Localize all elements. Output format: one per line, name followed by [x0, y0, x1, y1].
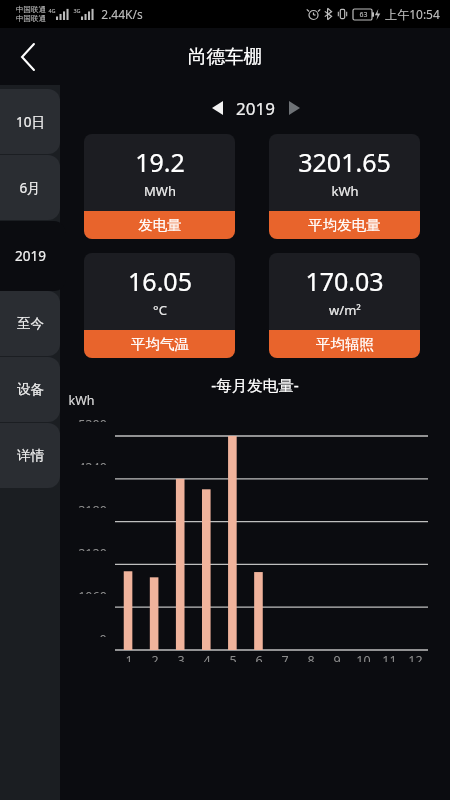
button[interactable]: Previous year	[202, 95, 232, 121]
staticText: 4G	[48, 7, 56, 14]
staticText: 5	[229, 652, 237, 662]
staticText: 10	[356, 652, 371, 662]
staticText: 10日	[16, 113, 45, 131]
staticText: 尚德车棚	[188, 45, 262, 68]
staticText: 3201.65	[298, 145, 391, 179]
staticText: MWh	[144, 182, 176, 200]
staticText: -每月发电量-	[211, 374, 299, 395]
staticText: 2.44K/s	[101, 6, 143, 22]
button[interactable]: 3201.65	[269, 134, 420, 239]
button[interactable]: 2019	[0, 221, 66, 291]
staticText: 1	[125, 652, 133, 662]
button[interactable]: 170.03	[269, 253, 420, 358]
staticText: 平均辐照	[316, 335, 374, 353]
staticText: 11	[382, 652, 397, 662]
staticText: kWh	[68, 392, 95, 409]
staticText: 详情	[17, 447, 44, 464]
staticText: kWh	[331, 182, 359, 200]
staticText: 8	[307, 652, 315, 662]
staticText: °C	[153, 301, 167, 319]
staticText: 平均发电量	[308, 216, 381, 234]
staticText: 2120	[78, 545, 107, 551]
button[interactable]: Back	[6, 35, 50, 79]
staticText: 7	[281, 652, 289, 662]
staticText: 设备	[17, 381, 44, 398]
staticText: 19.2	[135, 145, 185, 179]
staticText: 4240	[78, 459, 107, 465]
staticText: 中国联通	[16, 14, 46, 23]
staticText: 3180	[78, 502, 107, 508]
staticText: 4	[203, 652, 211, 662]
button[interactable]: Next year	[279, 95, 309, 121]
staticText: 6月	[19, 179, 41, 197]
staticText: 6	[255, 652, 263, 662]
staticText: 2019	[236, 97, 275, 120]
staticText: 中国联通	[16, 5, 46, 14]
staticText: 2	[151, 652, 159, 662]
staticText: 平均气温	[131, 335, 189, 353]
button[interactable]: 至今	[0, 291, 60, 356]
staticText: 9	[333, 652, 341, 662]
staticText: 16.05	[128, 264, 192, 298]
staticText: 63	[359, 10, 368, 20]
staticText: 至今	[17, 315, 44, 332]
staticText: 0	[99, 631, 107, 637]
staticText: 1060	[78, 588, 107, 594]
staticText: 上午10:54	[385, 6, 440, 22]
staticText: 5300	[78, 416, 107, 422]
staticText: 2019	[15, 247, 46, 265]
button[interactable]: 19.2	[84, 134, 235, 239]
staticText: 3G	[73, 7, 81, 14]
staticText: 发电量	[138, 216, 182, 234]
button[interactable]: 设备	[0, 357, 60, 422]
staticText: 170.03	[305, 264, 384, 298]
button[interactable]: 6月	[0, 155, 60, 220]
button[interactable]: 详情	[0, 423, 60, 488]
staticText: w/m²	[329, 301, 361, 319]
button[interactable]: 10日	[0, 89, 60, 154]
button[interactable]: 16.05	[84, 253, 235, 358]
staticText: 12	[408, 652, 423, 662]
staticText: 3	[177, 652, 185, 662]
